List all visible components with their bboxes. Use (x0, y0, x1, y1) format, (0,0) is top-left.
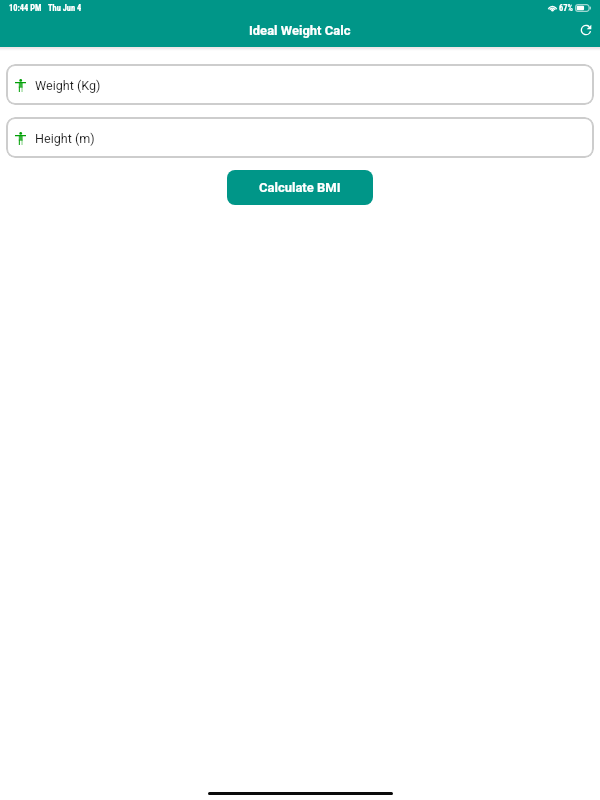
staticText: Thu Jun 4 (48, 3, 82, 13)
staticText: 10:44 PM (9, 3, 42, 13)
staticText: 67% (559, 3, 573, 13)
button[interactable]: Reset (574, 18, 598, 42)
button[interactable]: Height (m) (6, 117, 594, 158)
button[interactable]: Weight (Kg) (6, 64, 594, 105)
staticText: Ideal Weight Calc (249, 23, 351, 38)
button[interactable]: Calculate BMI (227, 170, 373, 205)
staticText: Calculate BMI (259, 180, 341, 195)
staticText: Height (m) (35, 131, 95, 146)
staticText: Weight (Kg) (35, 78, 101, 93)
